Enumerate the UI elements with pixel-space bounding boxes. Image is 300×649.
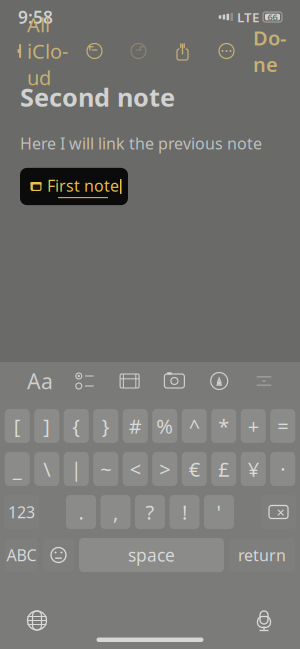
staticText: Here I will link the previous note (20, 133, 262, 154)
button[interactable]: Markup (205, 366, 233, 396)
button[interactable]: Camera (160, 366, 188, 396)
staticText: + (248, 413, 259, 439)
staticText: } (102, 413, 110, 439)
button[interactable]: ] (34, 409, 59, 443)
button[interactable]: Table (116, 366, 144, 396)
staticText: = (277, 413, 288, 439)
staticText: { (72, 413, 80, 439)
button[interactable]: More (211, 36, 241, 66)
staticText: ' (216, 499, 221, 525)
button[interactable]: [ (5, 409, 30, 443)
staticText: ] (43, 413, 50, 439)
button[interactable]: space (79, 538, 224, 572)
staticText: × (276, 502, 284, 522)
button[interactable]: \ (34, 452, 59, 486)
staticText: < (130, 456, 141, 482)
button[interactable]: Checklist (71, 366, 99, 396)
button[interactable]: € (182, 452, 207, 486)
button[interactable]: . (66, 495, 96, 529)
button[interactable]: ' (204, 495, 234, 529)
staticText: 123 (8, 501, 35, 523)
button[interactable]: Text format (26, 366, 54, 396)
button[interactable]: Delete (261, 495, 296, 529)
button[interactable]: ABC (5, 538, 38, 572)
button[interactable]: } (93, 409, 118, 443)
button[interactable]: Emoji (43, 538, 74, 572)
staticText: LTE (237, 8, 259, 26)
staticText: · (280, 456, 285, 482)
staticText: | (71, 456, 82, 482)
button[interactable]: Share (167, 35, 197, 67)
staticText: ABC (6, 544, 36, 566)
button[interactable]: ^ (182, 409, 207, 443)
button[interactable]: + (241, 409, 266, 443)
staticText: 9:58 (18, 5, 53, 28)
button[interactable]: # (123, 409, 148, 443)
staticText: space (128, 543, 175, 566)
staticText: ~ (100, 456, 111, 482)
staticText: ? (145, 499, 154, 525)
staticText: [ (14, 413, 21, 439)
button[interactable]: Done (251, 18, 288, 83)
staticText: ^ (189, 413, 200, 439)
button[interactable]: * (211, 409, 236, 443)
staticText: _ (13, 456, 22, 482)
staticText: Aa (27, 367, 53, 395)
button[interactable]: · (270, 452, 295, 486)
button[interactable]: ! (169, 495, 199, 529)
button[interactable]: , (100, 495, 130, 529)
button[interactable]: < (123, 452, 148, 486)
button[interactable]: _ (5, 452, 30, 486)
button[interactable]: return (229, 538, 295, 572)
staticText: 66 (267, 11, 277, 23)
staticText: , (113, 499, 118, 525)
button[interactable]: First note (20, 168, 128, 205)
staticText: All iCloud (27, 11, 68, 91)
button[interactable]: Redo (123, 36, 153, 66)
button[interactable]: All iCloud (12, 5, 70, 97)
staticText: £ (218, 456, 229, 482)
button[interactable]: Close keyboard (250, 366, 278, 396)
button[interactable]: Undo (79, 36, 109, 66)
staticText: . (78, 499, 83, 525)
staticText: ! (182, 499, 187, 525)
staticText: ¥ (248, 456, 259, 482)
button[interactable]: ¥ (241, 452, 266, 486)
staticText: > (159, 456, 170, 482)
button[interactable]: | (64, 452, 89, 486)
button[interactable]: Dictation (248, 602, 280, 638)
staticText: Done (253, 24, 286, 77)
button[interactable]: ? (135, 495, 165, 529)
button[interactable]: ~ (93, 452, 118, 486)
button[interactable]: £ (211, 452, 236, 486)
button[interactable]: > (152, 452, 177, 486)
button[interactable]: { (64, 409, 89, 443)
button[interactable]: 123 (4, 495, 39, 529)
button[interactable]: % (152, 409, 177, 443)
staticText: Second note (20, 80, 175, 114)
button[interactable]: Next keyboard (20, 603, 54, 637)
staticText: return (238, 544, 286, 566)
staticText: € (189, 456, 200, 482)
staticText: * (218, 413, 229, 439)
button[interactable]: = (270, 409, 295, 443)
staticText: \ (43, 456, 50, 482)
staticText: First note (47, 175, 119, 196)
staticText: % (156, 413, 173, 439)
staticText: # (129, 413, 142, 439)
